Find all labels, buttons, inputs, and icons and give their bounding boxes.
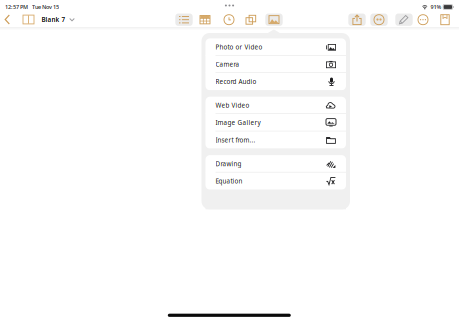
staticText: Web Video (215, 101, 249, 110)
button[interactable]: Record Audio (205, 73, 346, 90)
staticText: Record Audio (215, 77, 256, 86)
button[interactable]: Media (264, 13, 283, 27)
button[interactable]: Recent (219, 13, 238, 27)
button[interactable]: Collaborate (369, 13, 388, 27)
staticText: Blank 7 (41, 15, 65, 24)
button[interactable]: Photo or Video (205, 38, 346, 56)
staticText: Tue Nov 15 (32, 3, 59, 11)
button[interactable]: Share (347, 13, 366, 27)
staticText: Equation (215, 177, 242, 185)
button[interactable]: Drawing (205, 155, 346, 172)
button[interactable]: More (413, 13, 432, 27)
button[interactable]: Markup (394, 13, 413, 27)
button[interactable]: Format (174, 13, 193, 27)
staticText: 91% (430, 3, 441, 11)
staticText: 12:57 PM (5, 3, 28, 11)
staticText: Drawing (215, 159, 241, 168)
button[interactable]: Equation (205, 172, 346, 190)
button[interactable]: Web Video (205, 97, 346, 114)
button[interactable]: Camera (205, 56, 346, 73)
button[interactable]: Shapes (241, 13, 260, 27)
button[interactable]: Insert from... (205, 131, 346, 149)
staticText: Image Gallery (215, 118, 260, 127)
staticText: Photo or Video (215, 43, 262, 51)
button[interactable]: Document Options (435, 13, 454, 27)
button[interactable]: Notes (21, 12, 36, 26)
button[interactable]: Back (0, 12, 14, 26)
staticText: Insert from... (215, 136, 255, 144)
staticText: Camera (215, 60, 239, 69)
button[interactable]: Image Gallery (205, 114, 346, 131)
button[interactable]: Table (195, 13, 214, 27)
button[interactable]: Blank 7 (41, 12, 75, 26)
